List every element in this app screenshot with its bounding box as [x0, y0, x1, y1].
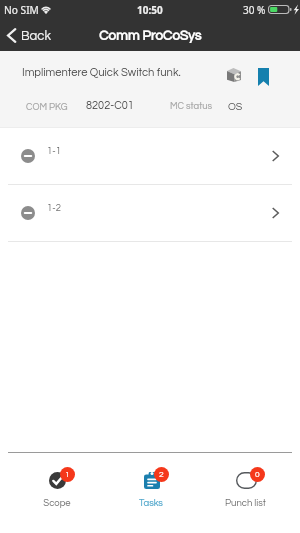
staticText: Implimentere Quick Switch funk.	[22, 67, 181, 79]
staticText: 8202-C01	[86, 100, 134, 111]
staticText: 2	[159, 470, 164, 479]
staticText: No SIM	[4, 3, 39, 17]
staticText: 10:50	[137, 3, 163, 17]
staticText: Back	[21, 29, 51, 42]
staticText: OS	[228, 101, 243, 112]
button[interactable]: 0	[198, 453, 292, 533]
staticText: Scope	[43, 498, 71, 508]
staticText: Tasks	[139, 498, 163, 508]
button[interactable]: 2	[104, 453, 198, 533]
button[interactable]: Commissioning package	[222, 63, 246, 87]
staticText: 1-1	[47, 146, 61, 156]
button[interactable]: 1	[9, 453, 104, 533]
staticText: Punch list	[225, 498, 266, 508]
button[interactable]: Back	[0, 23, 59, 48]
staticText: 30 %	[243, 3, 266, 17]
staticText: 1	[65, 470, 70, 479]
button[interactable]: 1-1	[0, 128, 300, 184]
button[interactable]: Bookmark	[251, 65, 275, 89]
staticText: MC status	[170, 101, 213, 111]
staticText: 1-2	[47, 203, 61, 213]
staticText: COM PKG	[26, 102, 68, 112]
button[interactable]: 1-2	[0, 185, 300, 241]
staticText: Comm ProCoSys	[99, 29, 202, 43]
staticText: 0	[255, 470, 260, 479]
